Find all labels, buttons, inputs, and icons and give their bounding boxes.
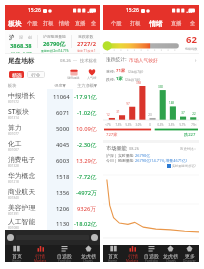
staticText: 7%< bbox=[191, 123, 197, 127]
staticText: 2727/2 bbox=[77, 40, 96, 48]
button[interactable]: 美容护理 bbox=[5, 201, 100, 217]
staticText: 13.29亿 bbox=[76, 157, 97, 165]
staticText: 1130 bbox=[56, 220, 70, 228]
staticText: 全球 bbox=[190, 20, 199, 27]
button[interactable]: 直播 bbox=[75, 16, 86, 30]
staticText: 主力净额▼ bbox=[73, 83, 97, 88]
button[interactable]: 人工智能 bbox=[5, 217, 100, 230]
staticText: 801218 bbox=[8, 180, 19, 184]
staticText: -18.02亿 bbox=[74, 220, 97, 228]
staticText: 358 bbox=[136, 81, 141, 85]
button[interactable]: 人气榜 bbox=[87, 68, 97, 80]
button[interactable]: 板块 bbox=[8, 16, 22, 30]
button[interactable]: 首页 bbox=[103, 245, 123, 262]
staticText: 3-0% bbox=[135, 123, 142, 127]
staticText: 0-3% bbox=[157, 123, 164, 127]
staticText: 打板 bbox=[130, 20, 141, 27]
staticText: 1206 bbox=[56, 205, 70, 213]
staticText: 沪深 | 实时量能 bbox=[106, 153, 135, 158]
button[interactable]: 直播 bbox=[171, 16, 182, 30]
button[interactable]: 精选 bbox=[9, 71, 24, 78]
staticText: 跌227 bbox=[184, 132, 196, 138]
button[interactable]: 华为概念 bbox=[5, 169, 100, 185]
staticText: Markets bbox=[34, 259, 47, 262]
button[interactable]: 龙虎榜 bbox=[161, 245, 180, 262]
button[interactable]: 消费电子 bbox=[5, 153, 100, 169]
staticText: 沪深预测量能 bbox=[43, 34, 66, 39]
staticText: 涨停揭秘 bbox=[67, 76, 80, 80]
staticText: 算力 bbox=[8, 123, 22, 132]
staticText: 6003 bbox=[56, 157, 70, 165]
staticText: 15:26 bbox=[126, 7, 139, 14]
button[interactable]: 情绪 bbox=[59, 16, 70, 30]
staticText: Portfolio bbox=[58, 259, 71, 262]
button[interactable]: 龙虎榜 bbox=[76, 245, 100, 262]
staticText: 涨跌家数 bbox=[78, 34, 94, 39]
button[interactable]: 首页 bbox=[5, 245, 28, 262]
staticText: 华为概念 bbox=[8, 171, 36, 180]
staticText: 31 bbox=[116, 110, 120, 114]
staticText: ST板块 bbox=[8, 107, 30, 116]
staticText: 全球 bbox=[91, 20, 100, 27]
staticText: 消费电子 bbox=[8, 155, 36, 164]
staticText: 跌停: bbox=[106, 77, 115, 82]
staticText: 首页 bbox=[12, 253, 22, 259]
staticText: 26790亿 bbox=[43, 40, 66, 48]
staticText: Charts bbox=[166, 259, 176, 262]
button[interactable]: 个股 bbox=[111, 16, 122, 30]
button[interactable]: 行业 bbox=[27, 71, 45, 78]
staticText: 市场人气较好 bbox=[129, 57, 158, 63]
staticText: 6071 bbox=[56, 109, 70, 117]
button[interactable]: 打板 bbox=[43, 16, 54, 30]
staticText: 历史对比 › bbox=[180, 146, 196, 151]
staticText: 板块 bbox=[8, 19, 22, 28]
staticText: 直播 bbox=[171, 20, 182, 27]
button[interactable]: 中报增长 bbox=[5, 89, 100, 105]
staticText: 中报增长 bbox=[8, 91, 36, 100]
staticText: 人气榜 bbox=[87, 76, 97, 80]
staticText: 板块 bbox=[8, 83, 47, 88]
staticText: 3-5% bbox=[168, 123, 175, 127]
staticText: Discover bbox=[183, 259, 196, 262]
staticText: -4972万 bbox=[76, 189, 97, 197]
staticText: 801077 bbox=[8, 132, 19, 136]
staticText: 涨停: bbox=[106, 69, 115, 74]
button[interactable]: ST板块 bbox=[5, 105, 100, 121]
button[interactable]: 全球 bbox=[190, 16, 199, 30]
button[interactable]: 算力 bbox=[5, 121, 100, 137]
staticText: 10.09亿 bbox=[76, 125, 97, 133]
staticText: 15:26 bbox=[28, 7, 41, 14]
staticText: 5-3% bbox=[125, 123, 132, 127]
staticText: 0 bbox=[149, 123, 151, 127]
staticText: Portfolio bbox=[145, 259, 158, 262]
staticText: 人工智能 bbox=[8, 217, 36, 226]
button[interactable]: 涨停揭秘 bbox=[67, 68, 80, 80]
button[interactable]: 全球 bbox=[91, 16, 100, 30]
button[interactable]: 情绪 bbox=[149, 16, 163, 30]
button[interactable]: 自选股 bbox=[142, 245, 161, 262]
staticText: ···· bbox=[73, 58, 78, 64]
staticText: 直播 bbox=[75, 20, 86, 27]
staticText: 个股 bbox=[27, 20, 38, 27]
staticText: 5-7% bbox=[179, 123, 186, 127]
staticText: 330 bbox=[158, 85, 163, 89]
staticText: 情绪指数 bbox=[185, 47, 198, 51]
staticText: 801314 bbox=[8, 116, 19, 120]
button[interactable]: 个股 bbox=[27, 16, 38, 30]
staticText: Home bbox=[12, 259, 22, 262]
button[interactable]: 行情 bbox=[28, 245, 52, 262]
button[interactable]: 行情 bbox=[123, 245, 142, 262]
button[interactable]: 化工 bbox=[5, 137, 100, 153]
staticText: 11064 bbox=[53, 93, 70, 101]
staticText: (2连板7家) bbox=[128, 70, 144, 74]
staticText: 5000 bbox=[56, 125, 70, 133]
staticText: 市场量能 bbox=[106, 145, 127, 152]
staticText: 4045 bbox=[56, 141, 70, 149]
staticText: 情绪 bbox=[59, 20, 70, 27]
staticText: 12 bbox=[106, 113, 110, 117]
button[interactable]: 更多 bbox=[180, 245, 199, 262]
button[interactable]: 商业航天 bbox=[5, 185, 100, 201]
button[interactable]: 自选股 bbox=[52, 245, 76, 262]
button[interactable]: 打板 bbox=[130, 16, 141, 30]
staticText: 801328 bbox=[8, 164, 19, 168]
